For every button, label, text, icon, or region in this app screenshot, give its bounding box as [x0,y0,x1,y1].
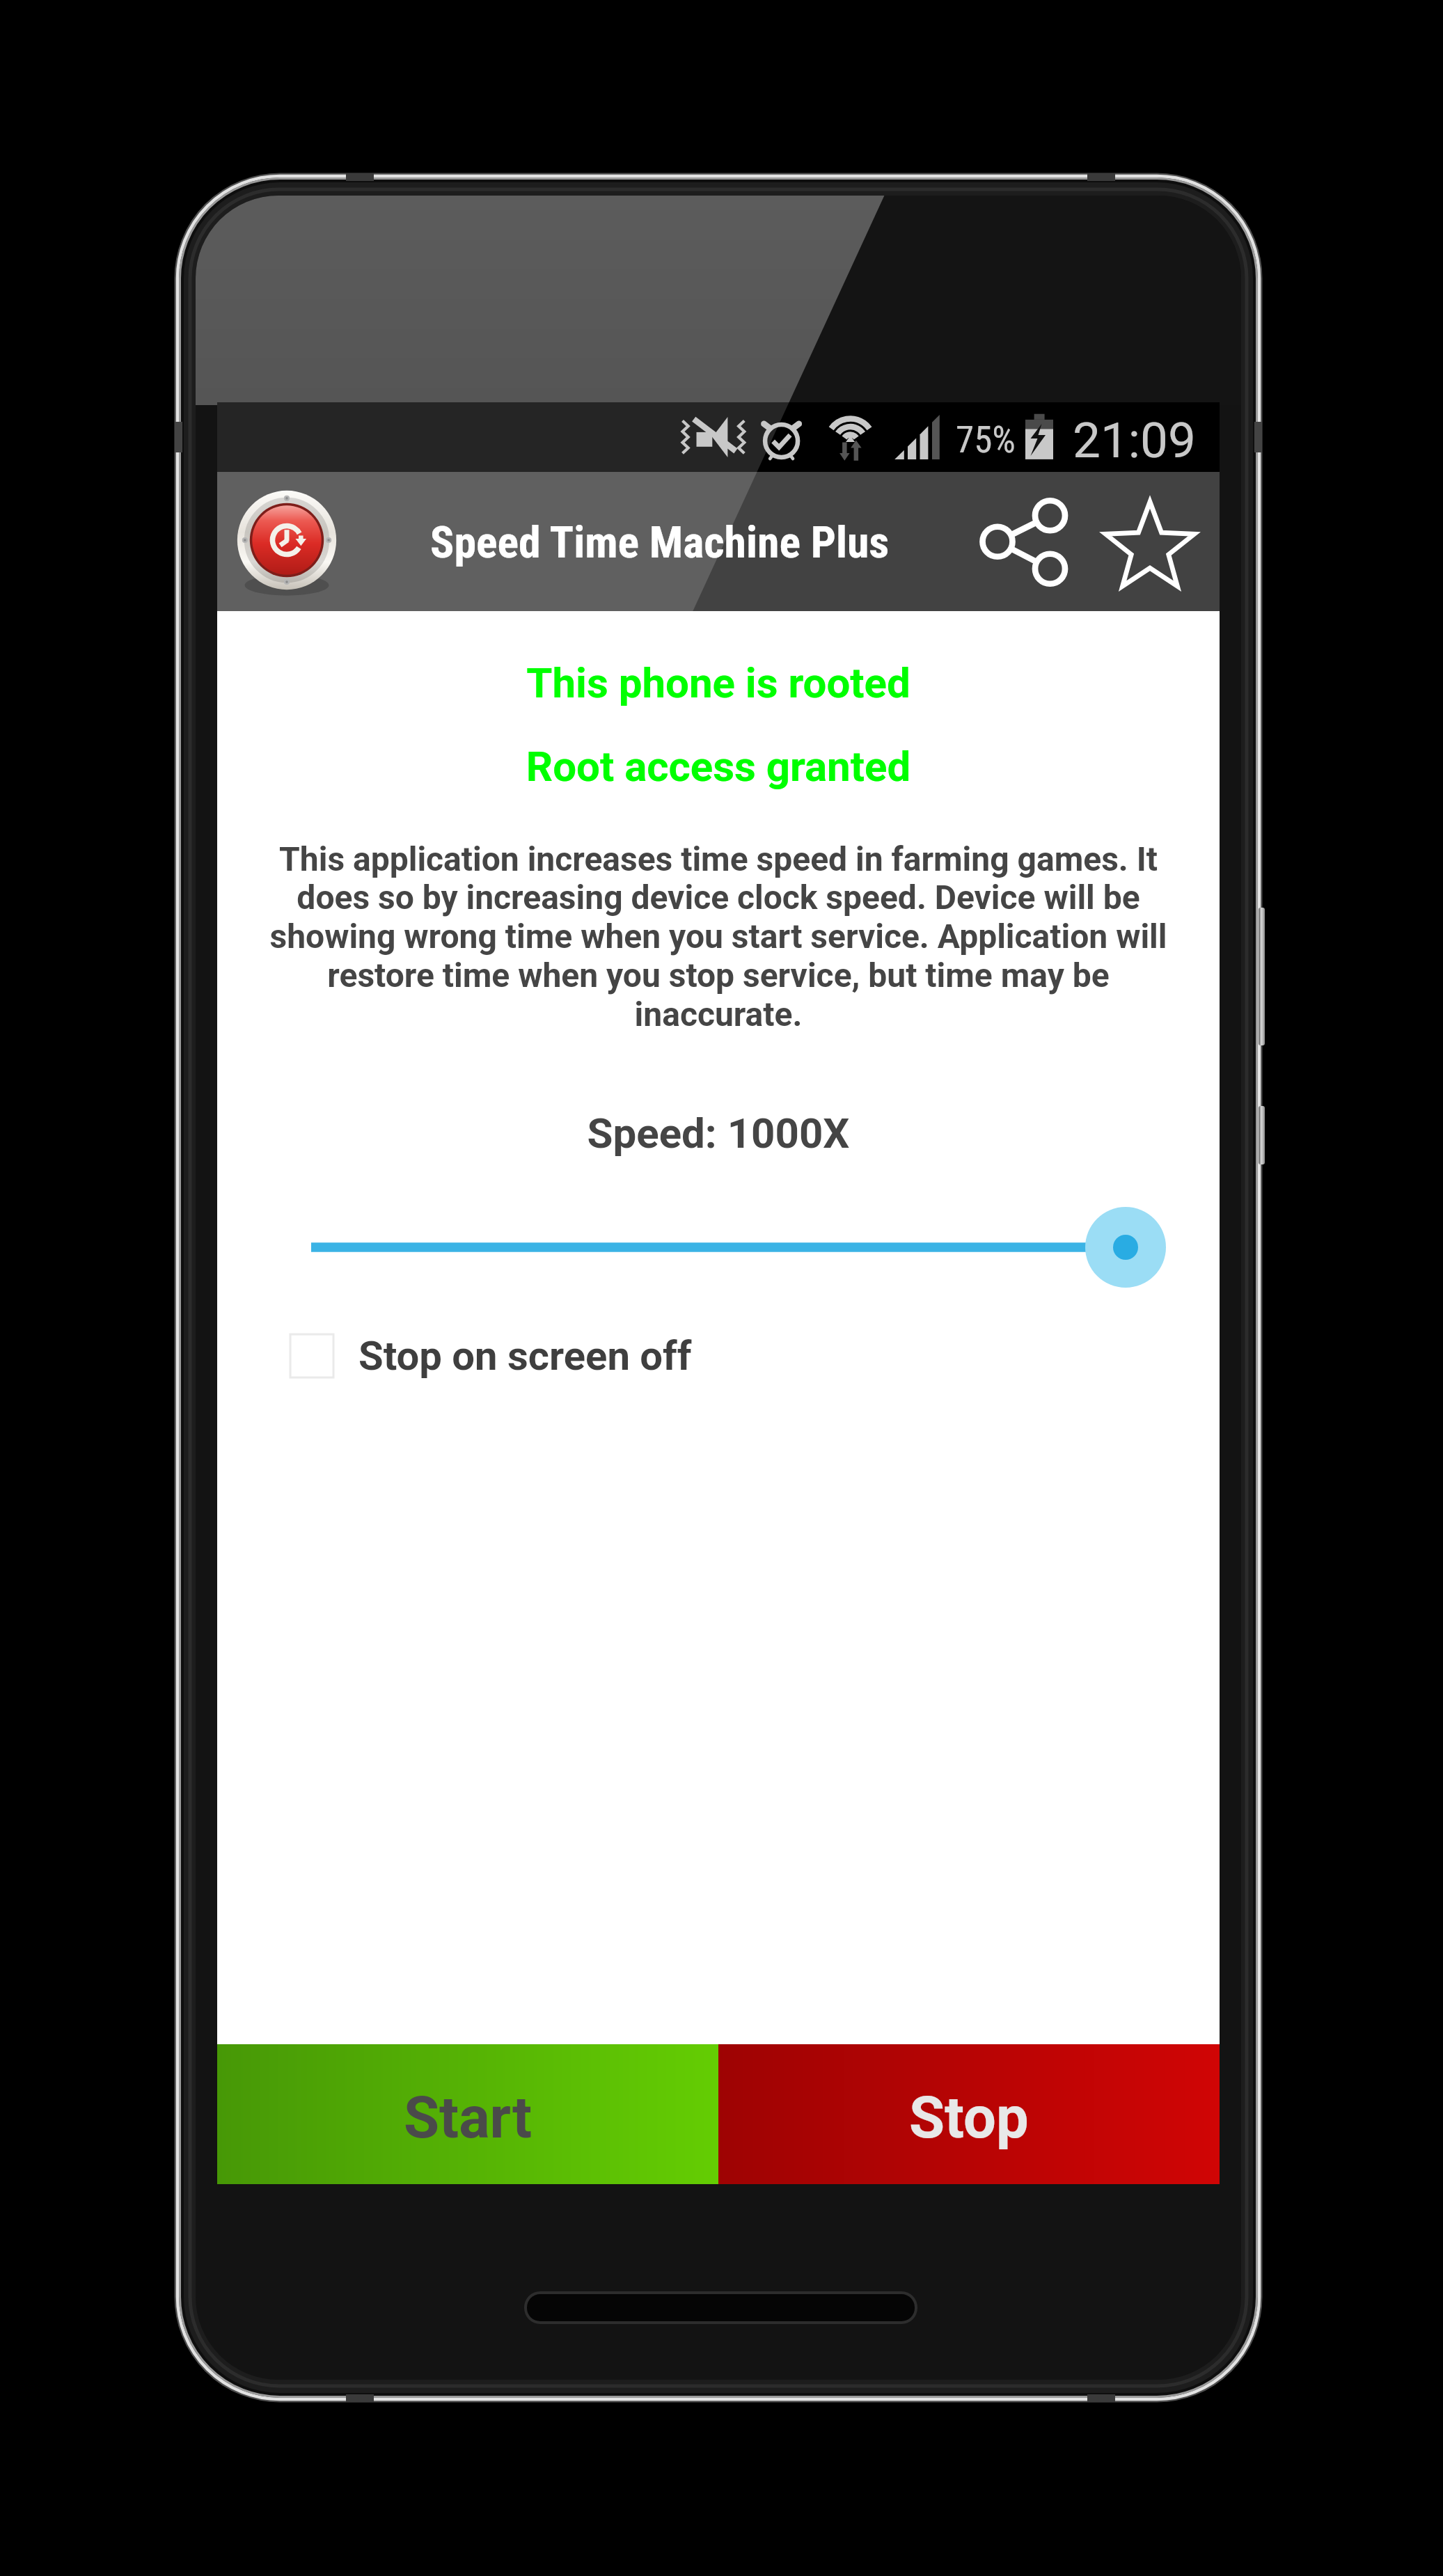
staticText: This phone is rooted [217,658,1220,707]
staticText: Root access granted [217,742,1220,791]
staticText: Speed Time Machine Plus [430,516,890,569]
staticText: 21:09 [1073,411,1196,469]
button[interactable]: Speed slider [217,1202,1220,1293]
button[interactable]: Share [975,493,1072,591]
staticText: This application increases time speed in… [260,839,1176,1034]
staticText: Stop [909,2084,1029,2151]
staticText: Stop on screen off [358,1332,692,1380]
button[interactable]: Speed Time Machine Plus [234,487,340,593]
staticText: Start [404,2084,533,2151]
button[interactable]: Start [217,2044,718,2184]
staticText: Speed: 1000X [217,1109,1220,1157]
staticText: 75% [956,418,1016,461]
button[interactable]: Stop on screen off [217,1318,1220,1394]
button[interactable]: Stop [718,2044,1220,2184]
button[interactable]: Rate this app [1097,496,1203,601]
